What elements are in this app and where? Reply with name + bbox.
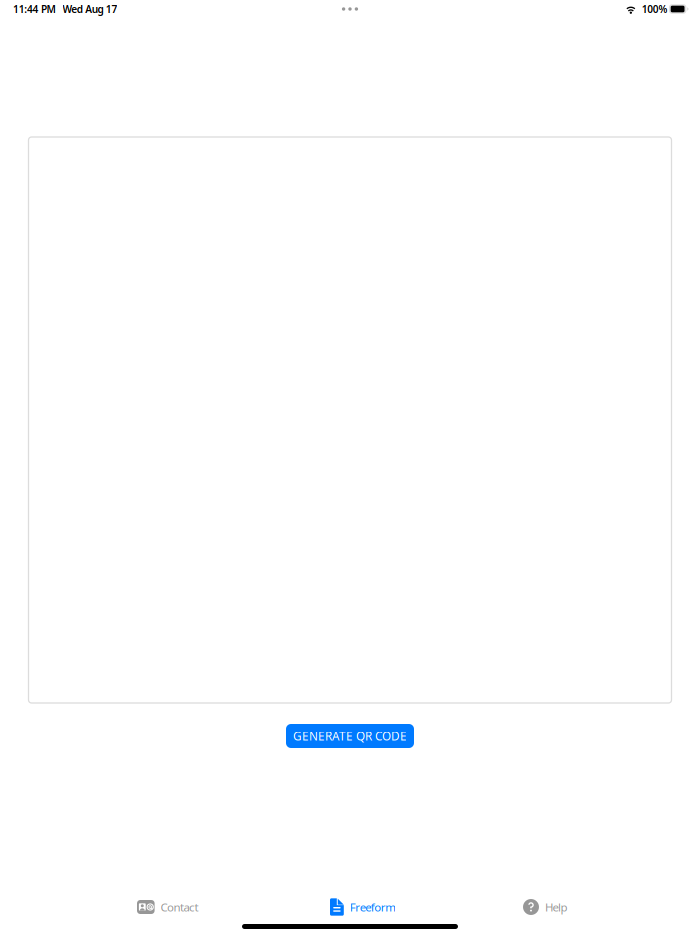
button[interactable]: Contact bbox=[137, 890, 330, 924]
staticText: 100% bbox=[642, 2, 667, 16]
button[interactable]: Freeform bbox=[330, 890, 523, 924]
staticText: 11:44 PM bbox=[13, 2, 56, 16]
staticText: Contact bbox=[161, 899, 199, 915]
button[interactable]: GENERATE QR CODE bbox=[286, 724, 414, 748]
button[interactable]: Help bbox=[523, 890, 700, 924]
staticText: Help bbox=[545, 899, 567, 915]
staticText: Freeform bbox=[350, 899, 396, 915]
staticText: Wed Aug 17 bbox=[63, 2, 117, 16]
staticText: GENERATE QR CODE bbox=[293, 728, 407, 744]
